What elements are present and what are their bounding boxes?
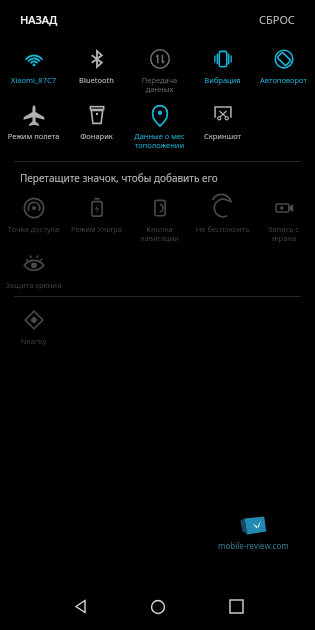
button[interactable]: Защита зрения [2, 247, 65, 290]
staticText: Режим Ультра [66, 224, 127, 234]
staticText: mobile-review.com [218, 540, 289, 551]
button[interactable]: Данные о мес тоположении [128, 98, 191, 151]
staticText: Точка доступа [3, 224, 64, 234]
button[interactable]: Режим полета [2, 98, 65, 141]
button[interactable]: Вибрация [191, 42, 254, 85]
button[interactable]: Nearby [2, 303, 65, 346]
staticText: Передача данных [129, 75, 190, 95]
staticText: Перетащите значок, чтобы добавить его [20, 171, 315, 185]
button[interactable]: Режим Ультра [65, 191, 128, 234]
button[interactable]: СБРОС [257, 10, 297, 29]
button[interactable]: Автоповорот [254, 42, 313, 85]
button[interactable]: НАЗАД [18, 10, 60, 29]
button[interactable]: Не беспокоить [191, 191, 254, 234]
button[interactable]: Back [41, 583, 119, 630]
staticText: Xiaomi_87C7 [3, 75, 64, 85]
button[interactable]: Xiaomi_87C7 [2, 42, 65, 85]
staticText: Не беспокоить [192, 224, 253, 234]
staticText: Nearby [3, 336, 64, 346]
button[interactable]: Передача данных [128, 42, 191, 95]
button[interactable]: Bluetooth [65, 42, 128, 85]
staticText: Bluetooth [66, 75, 127, 85]
staticText: Фонарик [66, 131, 127, 141]
button[interactable]: Скриншот [191, 98, 254, 141]
staticText: Скриншот [192, 131, 253, 141]
staticText: Защита зрения [3, 280, 64, 290]
button[interactable]: Фонарик [65, 98, 128, 141]
staticText: Данные о мес тоположении [129, 131, 190, 151]
button[interactable]: Home [119, 583, 197, 630]
staticText: Вибрация [192, 75, 253, 85]
staticText: СБРОС [259, 12, 295, 27]
button[interactable]: Запись с экрана [254, 191, 313, 244]
button[interactable]: Кнопка навигации [128, 191, 191, 244]
staticText: Автоповорот [255, 75, 312, 85]
staticText: Запись с экрана [255, 224, 312, 244]
staticText: НАЗАД [20, 12, 58, 27]
staticText: Кнопка навигации [129, 224, 190, 244]
button[interactable]: Точка доступа [2, 191, 65, 234]
staticText: Режим полета [3, 131, 64, 141]
button[interactable]: Recents [197, 583, 275, 630]
